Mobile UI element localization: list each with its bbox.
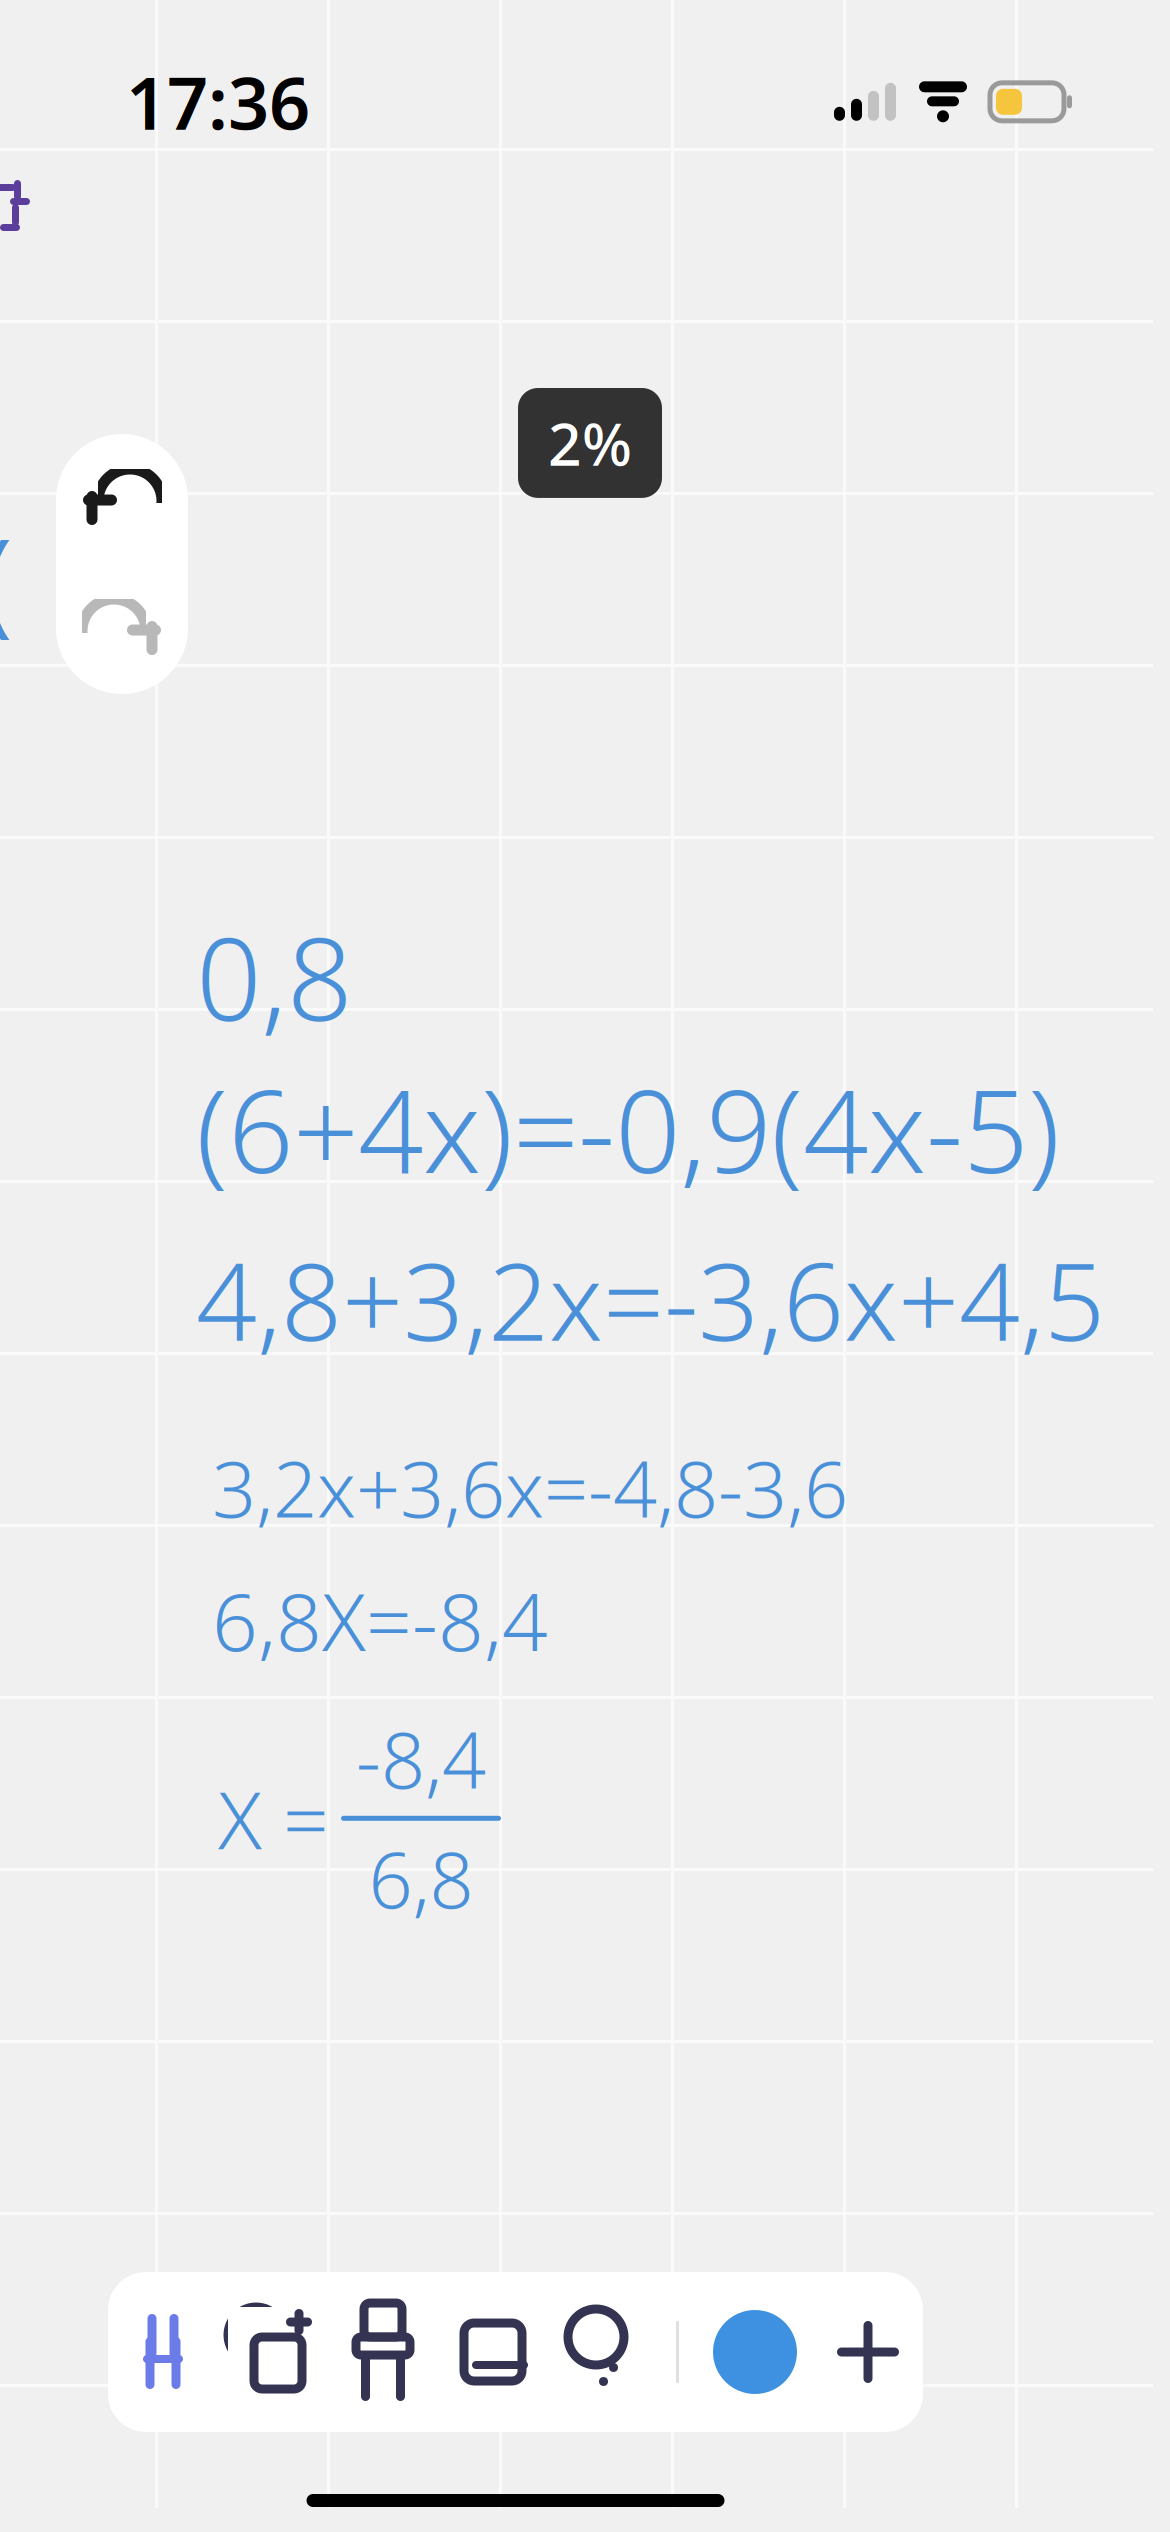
button[interactable]: Redo (56, 564, 188, 694)
staticText: 0,8 (6+4x)=-0,9(4x-5) (196, 900, 1060, 1204)
button[interactable]: Color, blue (697, 2272, 813, 2432)
button[interactable]: Close drawing tools (813, 2272, 923, 2432)
staticText: 17:36 (126, 54, 310, 150)
button[interactable]: Undo (56, 434, 188, 564)
button[interactable]: Eraser (438, 2272, 548, 2432)
staticText: 4,8+3,2x=-3,6x+4,5 (196, 1228, 1105, 1370)
staticText: 6,8 (368, 1827, 473, 1929)
button[interactable]: Highlighter (328, 2272, 438, 2432)
button[interactable]: Smart shape (218, 2272, 328, 2432)
staticText: X = (218, 1765, 329, 1871)
staticText: 3,2x+3,6x=-4,8-3,6 (212, 1436, 848, 1539)
button[interactable]: Pen (108, 2272, 218, 2432)
staticText: -8,4 (356, 1707, 486, 1810)
staticText: 6,8X=-8,4 (212, 1567, 548, 1673)
button[interactable]: Lasso select (548, 2272, 658, 2432)
staticText: 2% (548, 404, 632, 482)
